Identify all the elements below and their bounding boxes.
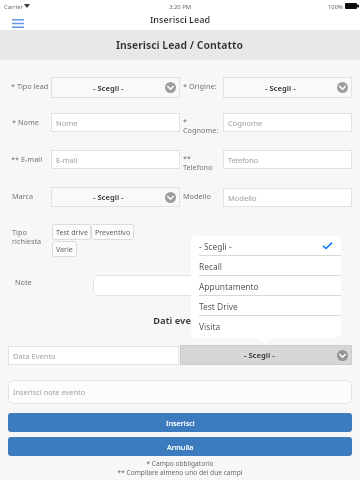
button[interactable]: Data Evento [8,346,179,365]
staticText: ** Telefono [183,153,213,172]
button[interactable]: Telefono [223,150,352,169]
button[interactable]: - Scegli - [51,77,180,98]
staticText: E-mail [56,155,78,165]
button[interactable]: Visita [191,316,341,336]
staticText: - Scegli - [265,83,296,93]
staticText: Varie [56,244,73,254]
staticText: * Origine: [183,81,217,91]
staticText: Tipo richiesta [12,227,42,246]
staticText: Inserisci Lead [150,13,211,25]
staticText: Preventivo [95,227,131,237]
staticText: Modello [228,193,257,203]
staticText: ** Compilare almeno uno dei due campi [0,468,360,477]
staticText: Marca [12,191,34,201]
staticText: Modello [183,191,211,201]
staticText: Test drive [56,227,88,237]
button[interactable]: E-mail [51,150,180,169]
button[interactable]: Recall [191,256,341,276]
button[interactable]: - Scegli - [223,77,352,98]
staticText: Inserisci note evento [13,387,86,397]
staticText: Cognome [228,118,263,128]
staticText: - Scegli - [93,83,124,93]
staticText: 100% [328,3,344,11]
staticText: ** E-mail [11,154,43,164]
staticText: * Nome [12,117,39,127]
button[interactable]: Test Drive [191,296,341,316]
staticText: * Cognome: [183,116,219,135]
staticText: * Tipo lead [11,81,49,91]
staticText: 3:20 PM [169,3,192,11]
button[interactable]: - Scegli - [191,236,341,256]
button[interactable]: Preventivo [91,224,134,240]
button[interactable]: Nome [51,113,180,132]
staticText: Note [15,277,32,287]
staticText: * Campo obbligatorio [0,459,360,468]
staticText: Test Drive [199,301,238,312]
button[interactable]: - Scegli - [51,187,180,207]
staticText: Annulla [167,442,194,452]
button[interactable] [93,275,278,296]
staticText: - Scegli - [244,350,275,360]
button[interactable]: Annulla [8,437,352,456]
staticText: Telefono [228,155,259,165]
staticText: Visita [199,321,221,332]
button[interactable]: Open navigation menu [6,12,29,35]
button[interactable]: - Scegli - [180,345,352,365]
button[interactable]: Inserisci note evento [8,380,352,404]
staticText: - Scegli - [93,192,124,202]
button[interactable]: Appuntamento [191,276,341,296]
staticText: Inserisci [166,418,195,428]
staticText: Carrier [4,3,23,11]
staticText: - Scegli - [199,241,232,252]
staticText: Recall [199,261,223,272]
button[interactable]: Inserisci [8,413,352,432]
staticText: Nome [56,118,78,128]
staticText: Appuntamento [199,281,259,292]
button[interactable]: Cognome [223,113,352,132]
staticText: Dati evento [153,314,207,327]
staticText: Data Evento [13,351,56,361]
staticText: Inserisci Lead / Contatto [116,38,244,52]
button[interactable]: Varie [52,241,77,257]
button[interactable]: Modello [223,188,352,207]
button[interactable]: Test drive [52,224,91,240]
